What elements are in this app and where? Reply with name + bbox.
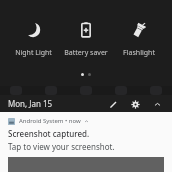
button[interactable]: Night Light xyxy=(7,16,59,60)
staticText: Android System • now xyxy=(19,117,81,125)
staticText: Tap to view your screenshot. xyxy=(8,141,115,152)
button[interactable]: Flashlight xyxy=(113,16,165,60)
other: Battery saver xyxy=(74,18,98,42)
other: Night Light xyxy=(21,18,45,42)
button[interactable]: Battery saver xyxy=(60,16,112,60)
other: Flashlight xyxy=(127,18,151,42)
staticText: Flashlight xyxy=(123,48,155,58)
staticText: Battery saver xyxy=(64,48,108,58)
staticText: Night Light xyxy=(15,48,52,58)
button[interactable]: Settings xyxy=(128,97,142,111)
staticText: Mon, Jan 15 xyxy=(8,98,53,109)
button[interactable]: Android System • now xyxy=(8,117,164,172)
button[interactable]: Edit xyxy=(106,97,120,111)
button[interactable]: Collapse xyxy=(150,97,164,111)
staticText: Screenshot captured. xyxy=(8,128,90,139)
